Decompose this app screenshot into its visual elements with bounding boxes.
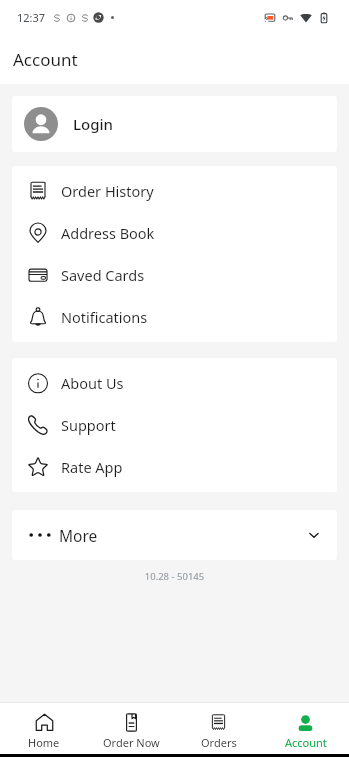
staticText: 12:37	[17, 10, 46, 25]
button[interactable]: Account	[262, 703, 349, 754]
button[interactable]: Support	[12, 404, 337, 446]
button[interactable]: Notifications	[12, 296, 337, 338]
staticText: About Us	[61, 373, 124, 393]
button[interactable]: Login	[12, 96, 337, 152]
staticText: Account	[13, 48, 78, 71]
staticText: Notifications	[61, 307, 148, 327]
button[interactable]: Rate App	[12, 446, 337, 488]
button[interactable]: Saved Cards	[12, 254, 337, 296]
staticText: Order Now	[103, 735, 160, 750]
staticText: More	[59, 525, 98, 546]
button[interactable]: Order Now	[88, 703, 175, 754]
button[interactable]: Address Book	[12, 212, 337, 254]
staticText: Order History	[61, 181, 154, 201]
staticText: Rate App	[61, 457, 123, 477]
staticText: Saved Cards	[61, 265, 145, 285]
staticText: Home	[28, 735, 60, 750]
button[interactable]: About Us	[12, 362, 337, 404]
button[interactable]: More	[12, 510, 337, 560]
button[interactable]: Home	[0, 703, 88, 754]
button[interactable]: Orders	[175, 703, 262, 754]
staticText: 10.28 - 50145	[0, 570, 349, 583]
staticText: Address Book	[61, 223, 155, 243]
staticText: Account	[285, 735, 327, 750]
button[interactable]: Order History	[12, 170, 337, 212]
staticText: Orders	[201, 735, 237, 750]
staticText: Support	[61, 415, 116, 435]
staticText: Login	[73, 114, 113, 134]
